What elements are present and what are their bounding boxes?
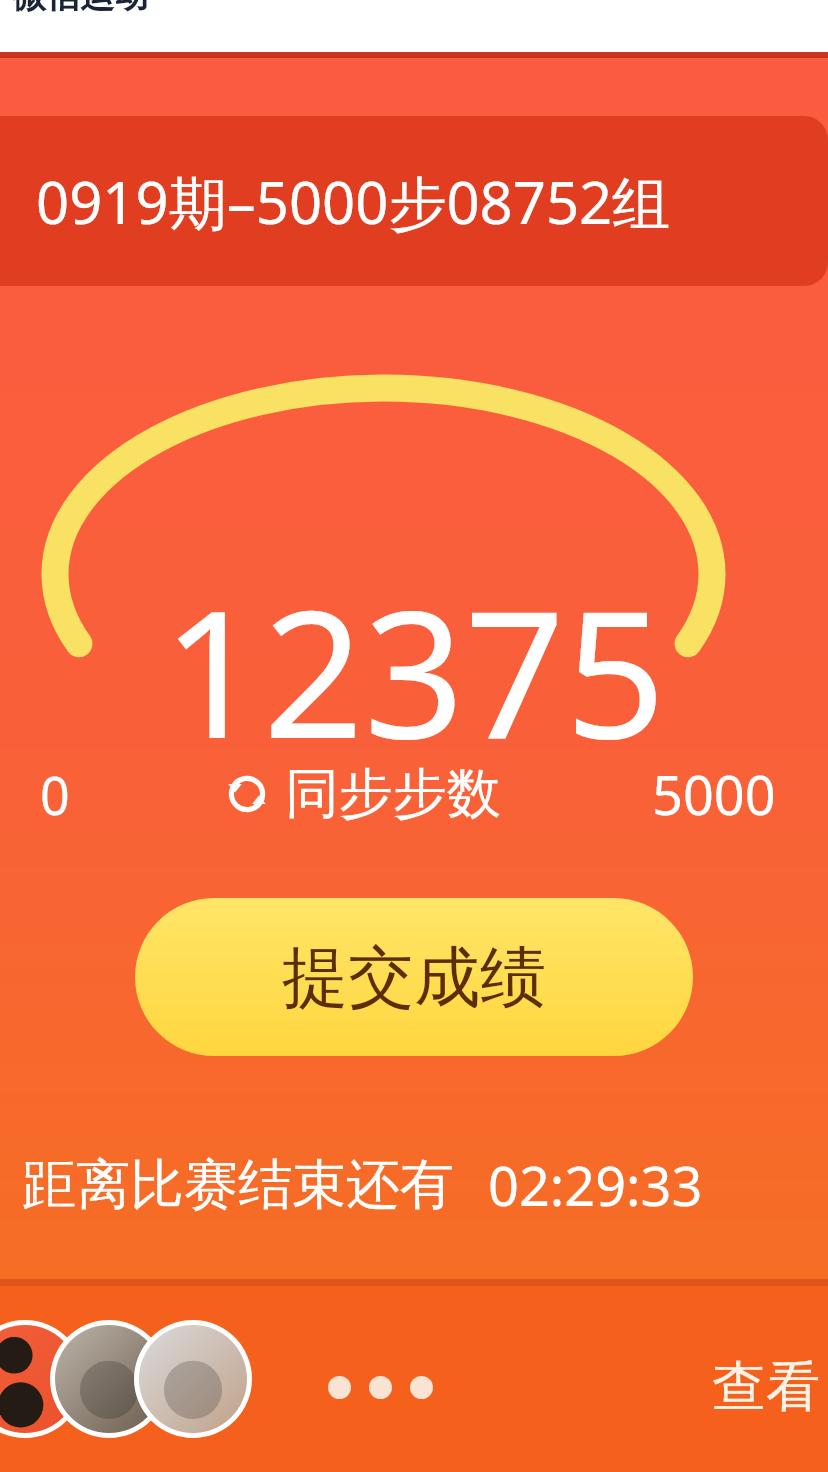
staticText: 查看 — [712, 1353, 820, 1421]
staticText: 0 — [40, 759, 70, 830]
button[interactable]: Participants — [0, 1320, 84, 1438]
staticText: 02:29:33 — [488, 1148, 703, 1222]
staticText: 微信运动 — [12, 0, 148, 17]
button[interactable]: More participants — [322, 1370, 439, 1405]
button[interactable]: 0919期–5000步08752组 — [0, 116, 828, 286]
staticText: 同步步数 — [285, 760, 501, 828]
staticText: 5000 — [652, 757, 776, 831]
staticText: 12375 — [162, 550, 666, 790]
staticText: 0919期–5000步08752组 — [36, 162, 671, 241]
staticText: 距离比赛结束还有 — [22, 1151, 454, 1219]
button[interactable]: 查看 — [704, 1345, 828, 1429]
button[interactable]: 提交成绩 — [135, 898, 693, 1056]
staticText: 提交成绩 — [282, 936, 546, 1019]
button[interactable]: 同步步数 — [217, 756, 505, 832]
